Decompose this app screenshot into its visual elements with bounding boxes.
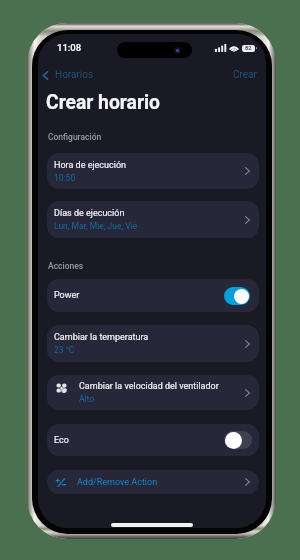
button[interactable]: Cambiar la velocidad del ventilador [47,375,259,410]
staticText: Configuración [48,132,102,142]
staticText: Eco [54,435,224,446]
staticText: Lun, Mar, Mie, Jue, Vie [54,221,138,231]
staticText: 11:08 [57,42,82,53]
button[interactable]: Power [47,279,259,312]
staticText: Power [54,290,224,301]
staticText: Crear horario [46,91,160,114]
staticText: Acciones [48,261,84,271]
button[interactable]: Add/Remove Action [47,470,259,494]
button[interactable]: Eco [47,424,259,456]
staticText: Cambiar la velocidad del ventilador [79,381,219,392]
button[interactable]: Power [224,287,250,305]
staticText: 10:50 [54,173,76,183]
button[interactable]: Eco [224,431,252,449]
button[interactable]: Crear [227,66,263,84]
button[interactable]: Días de ejecución [47,201,259,238]
staticText: 23 °C [54,345,75,355]
staticText: Alto [79,394,95,404]
staticText: Días de ejecución [54,208,125,219]
staticText: Add/Remove Action [77,477,245,488]
staticText: 82 [245,45,252,52]
button[interactable]: Horarios [39,66,99,84]
staticText: Cambiar la temperatura [54,332,149,343]
staticText: Hora de ejecución [54,160,127,171]
staticText: Crear [233,69,257,81]
button[interactable]: Cambiar la temperatura [47,325,259,362]
button[interactable]: Hora de ejecución [47,153,259,189]
staticText: Horarios [55,69,94,81]
